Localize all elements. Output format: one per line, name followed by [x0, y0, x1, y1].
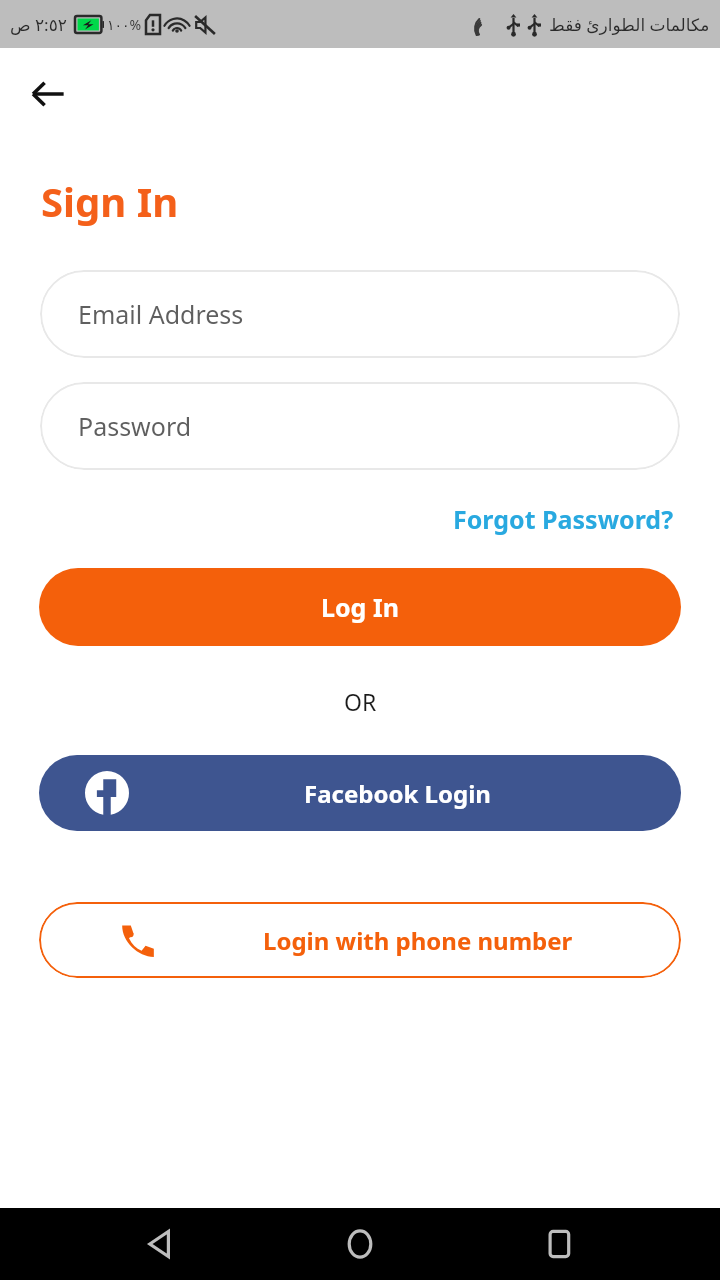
button[interactable]: Forgot Password?	[449, 498, 678, 540]
staticText: ١٠٠%	[107, 15, 142, 34]
button[interactable]: Home	[320, 1208, 400, 1280]
staticText: Email Address	[78, 297, 244, 331]
button[interactable]: Login with phone number	[39, 902, 681, 978]
button[interactable]: Email Address	[40, 270, 680, 358]
staticText: Password	[78, 409, 192, 443]
button[interactable]: Facebook Login	[39, 755, 681, 831]
staticText: Sign In	[41, 174, 179, 228]
staticText: Facebook Login	[304, 777, 491, 810]
button[interactable]: Password	[40, 382, 680, 470]
staticText: مكالمات الطوارئ فقط	[549, 13, 710, 36]
staticText: OR	[344, 686, 377, 717]
button[interactable]: Back	[24, 70, 72, 118]
staticText: Login with phone number	[263, 924, 573, 957]
button[interactable]: Log In	[39, 568, 681, 646]
staticText: Log In	[321, 590, 399, 624]
staticText: Forgot Password?	[453, 502, 674, 536]
button[interactable]: Recents	[520, 1208, 600, 1280]
staticText: ٢:٥٢ ص	[10, 13, 67, 36]
button[interactable]: Back	[120, 1208, 200, 1280]
